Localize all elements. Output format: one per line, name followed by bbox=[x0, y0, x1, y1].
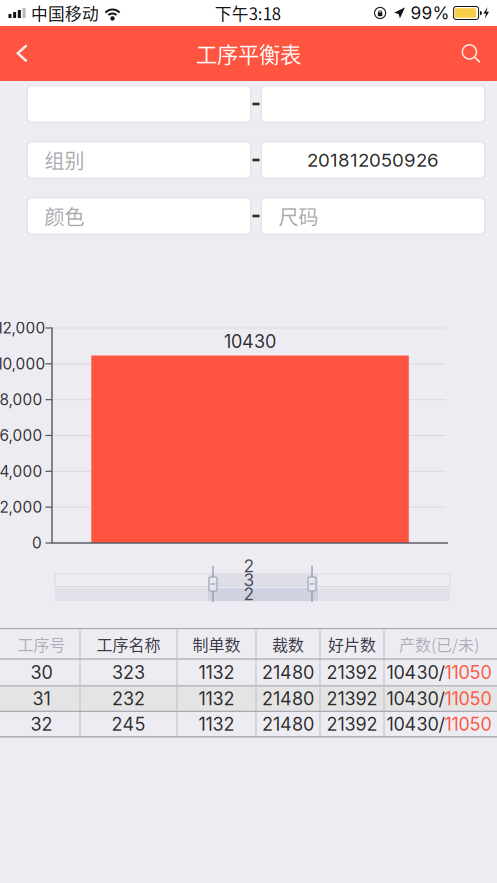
staticText: 10,000 bbox=[0, 355, 45, 373]
staticText: 245 bbox=[111, 713, 145, 735]
staticText: 尺码 bbox=[278, 201, 318, 230]
staticText: 11050 bbox=[444, 662, 491, 683]
staticText: 11050 bbox=[444, 688, 491, 710]
button[interactable]: 颜色 bbox=[27, 198, 250, 234]
staticText: 工序号 bbox=[17, 632, 65, 655]
staticText: 制单数 bbox=[192, 632, 240, 655]
button[interactable]: Back bbox=[0, 26, 43, 81]
staticText: 32 bbox=[30, 713, 52, 735]
staticText: 4,000 bbox=[0, 462, 42, 481]
staticText: 3 bbox=[243, 569, 254, 590]
staticText: 2 bbox=[243, 583, 254, 604]
staticText: 工序名称 bbox=[96, 632, 160, 655]
staticText: 11050 bbox=[444, 713, 491, 735]
staticText: 21480 bbox=[262, 713, 314, 735]
staticText: 1132 bbox=[198, 713, 234, 735]
staticText: 30 bbox=[30, 662, 52, 683]
staticText: 6,000 bbox=[0, 426, 42, 445]
staticText: 好片数 bbox=[328, 632, 376, 655]
button[interactable]: 201812050926 bbox=[261, 142, 484, 178]
button[interactable]: 组别 bbox=[27, 142, 250, 178]
staticText: 99% bbox=[411, 2, 450, 23]
button[interactable]: Search bbox=[446, 26, 497, 81]
staticText: 10430/ bbox=[386, 688, 444, 710]
staticText: 颜色 bbox=[44, 201, 84, 230]
staticText: 1132 bbox=[198, 688, 234, 710]
staticText: 0 bbox=[32, 534, 42, 552]
staticText: 10430 bbox=[224, 331, 276, 352]
staticText: 21392 bbox=[326, 662, 377, 683]
staticText: 工序平衡表 bbox=[196, 38, 301, 69]
staticText: 10430/ bbox=[386, 713, 444, 735]
staticText: 产数(已/未) bbox=[399, 632, 479, 655]
staticText: 2 bbox=[243, 555, 254, 576]
staticText: 21392 bbox=[326, 713, 377, 735]
staticText: 201812050926 bbox=[307, 149, 439, 171]
staticText: 31 bbox=[32, 688, 50, 710]
staticText: 21392 bbox=[326, 688, 377, 710]
staticText: 21480 bbox=[262, 688, 314, 710]
staticText: 10430/ bbox=[386, 662, 444, 683]
staticText: 12,000 bbox=[0, 319, 45, 337]
staticText: 21480 bbox=[262, 662, 314, 683]
button[interactable] bbox=[27, 86, 250, 122]
staticText: 裁数 bbox=[272, 632, 304, 655]
staticText: 1132 bbox=[198, 662, 234, 683]
staticText: 中国移动 bbox=[31, 1, 99, 25]
staticText: 组别 bbox=[44, 145, 84, 174]
staticText: 232 bbox=[112, 688, 145, 710]
staticText: 8,000 bbox=[0, 390, 42, 409]
staticText: 323 bbox=[112, 662, 145, 683]
button[interactable] bbox=[261, 86, 484, 122]
button[interactable]: 尺码 bbox=[261, 198, 484, 234]
staticText: 2,000 bbox=[0, 498, 42, 516]
staticText: 下午3:18 bbox=[215, 1, 281, 25]
